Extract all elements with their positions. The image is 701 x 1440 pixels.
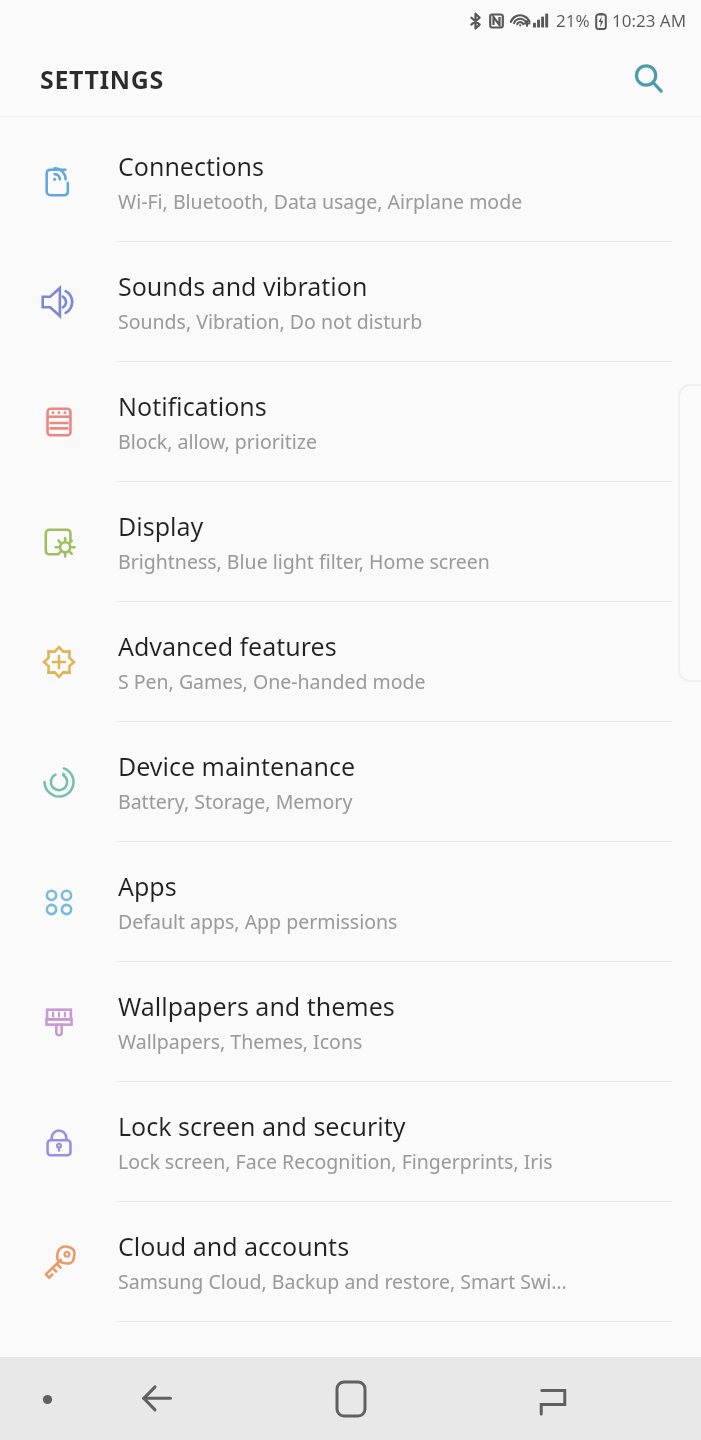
staticText: Device maintenance bbox=[118, 749, 356, 783]
staticText: Display bbox=[118, 509, 204, 543]
button[interactable]: Apps bbox=[0, 842, 701, 962]
button[interactable]: Device maintenance bbox=[0, 722, 701, 842]
button[interactable]: Notifications bbox=[0, 362, 701, 482]
button[interactable]: Connections bbox=[0, 122, 701, 242]
staticText: Wallpapers and themes bbox=[118, 989, 395, 1023]
staticText: Wallpapers, Themes, Icons bbox=[118, 1028, 363, 1055]
button[interactable]: Lock screen and security bbox=[0, 1082, 701, 1202]
staticText: SETTINGS bbox=[40, 62, 164, 96]
button[interactable]: Recent apps bbox=[525, 1371, 581, 1427]
staticText: Notifications bbox=[118, 389, 267, 423]
button[interactable]: Cloud and accounts bbox=[0, 1202, 701, 1322]
staticText: S Pen, Games, One-handed mode bbox=[118, 668, 426, 695]
staticText: Sounds, Vibration, Do not disturb bbox=[118, 308, 423, 335]
staticText: Sounds and vibration bbox=[118, 269, 368, 303]
staticText: 10:23 AM bbox=[612, 9, 687, 32]
button[interactable]: Wallpapers and themes bbox=[0, 962, 701, 1082]
button[interactable]: Display bbox=[0, 482, 701, 602]
button[interactable]: Sounds and vibration bbox=[0, 242, 701, 362]
staticText: Wi-Fi, Bluetooth, Data usage, Airplane m… bbox=[118, 188, 523, 215]
staticText: Block, allow, prioritize bbox=[118, 428, 318, 455]
staticText: Advanced features bbox=[118, 629, 337, 663]
staticText: 21% bbox=[556, 9, 590, 32]
staticText: Cloud and accounts bbox=[118, 1229, 350, 1263]
button[interactable]: Back bbox=[128, 1371, 184, 1427]
staticText: Samsung Cloud, Backup and restore, Smart… bbox=[118, 1268, 567, 1295]
staticText: Battery, Storage, Memory bbox=[118, 788, 353, 815]
staticText: Apps bbox=[118, 869, 177, 903]
button[interactable]: Advanced features bbox=[0, 602, 701, 722]
staticText: Default apps, App permissions bbox=[118, 908, 398, 935]
button[interactable]: More options bbox=[24, 1376, 70, 1422]
button[interactable]: Home bbox=[322, 1370, 380, 1428]
button[interactable]: Search bbox=[625, 55, 673, 103]
staticText: Connections bbox=[118, 149, 264, 183]
staticText: Brightness, Blue light filter, Home scre… bbox=[118, 548, 490, 575]
staticText: Lock screen and security bbox=[118, 1109, 406, 1143]
staticText: Lock screen, Face Recognition, Fingerpri… bbox=[118, 1148, 553, 1175]
